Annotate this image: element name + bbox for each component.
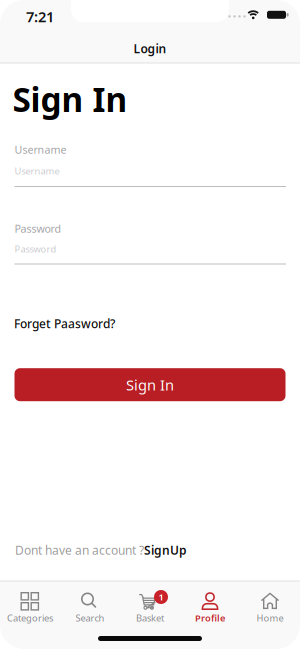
button[interactable]: Sign In	[14, 368, 285, 401]
button[interactable]: Forget Paasword?	[14, 313, 286, 333]
button[interactable]: SignUp	[144, 542, 187, 558]
staticText: Basket	[136, 612, 164, 624]
staticText: Sign In	[126, 375, 174, 394]
button[interactable]: Home	[240, 582, 300, 630]
staticText: Sign In	[12, 77, 127, 121]
staticText: Search	[75, 612, 104, 624]
staticText: SignUp	[144, 542, 187, 558]
staticText: Categories	[7, 612, 53, 624]
staticText: Username	[14, 165, 59, 177]
staticText: Dont have an account ?	[15, 542, 144, 558]
staticText: Username	[14, 142, 66, 157]
staticText: Password	[14, 243, 56, 255]
staticText: Home	[256, 612, 283, 624]
button[interactable]: Categories	[0, 582, 60, 630]
staticText: 1	[158, 591, 163, 603]
button[interactable]: Search	[60, 582, 120, 630]
staticText: Password	[14, 221, 61, 236]
staticText: Forget Paasword?	[14, 315, 115, 331]
staticText: Profile	[195, 612, 225, 624]
staticText: Login	[133, 40, 166, 56]
staticText: 7:21	[26, 7, 54, 26]
button[interactable]: Basket	[120, 582, 180, 630]
button[interactable]: Profile	[180, 582, 240, 630]
